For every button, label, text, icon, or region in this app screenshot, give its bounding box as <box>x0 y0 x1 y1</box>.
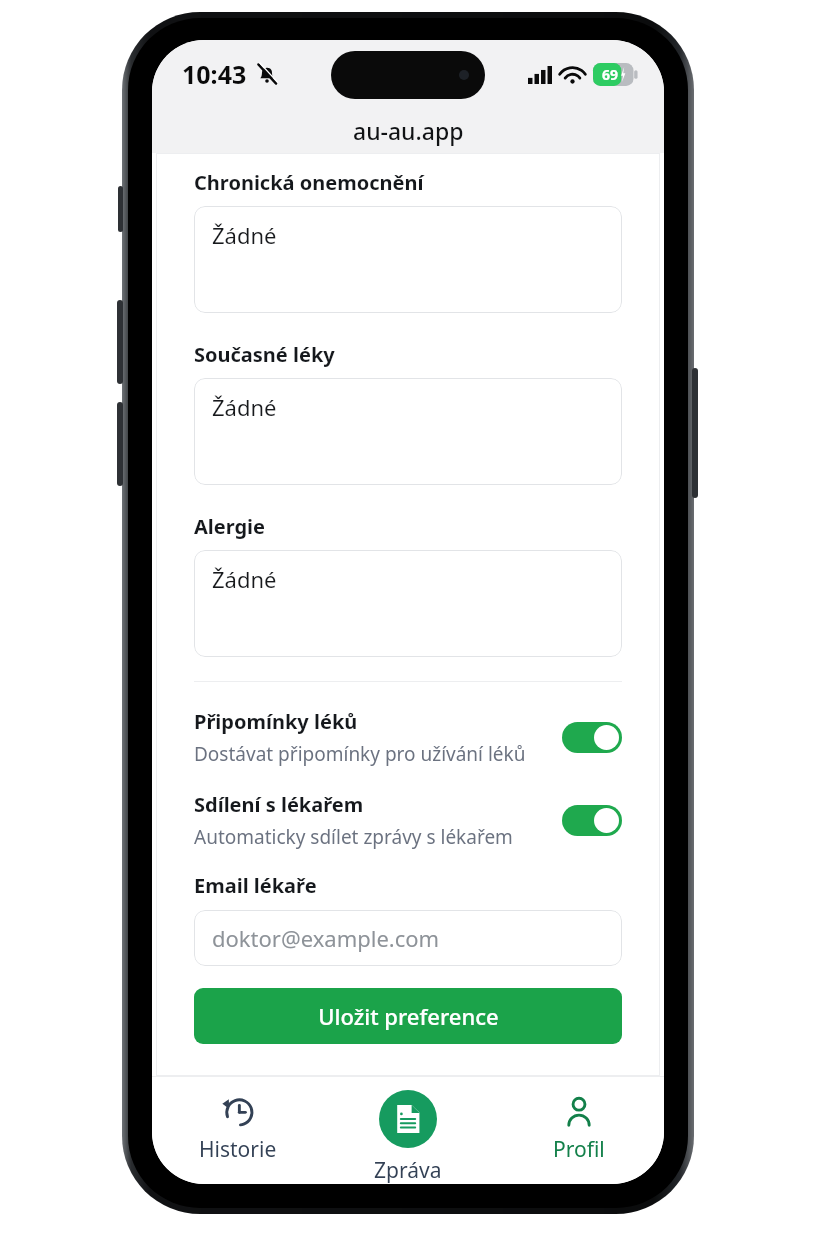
staticText: doktor@example.com <box>212 923 440 953</box>
button[interactable]: Toggle <box>562 805 622 836</box>
staticText: 69 <box>602 65 619 84</box>
button[interactable]: doktor@example.com <box>194 910 622 966</box>
staticText: Dostávat připomínky pro užívání léků <box>194 741 526 767</box>
staticText: Profil <box>553 1135 605 1164</box>
staticText: Sdílení s lékařem <box>194 791 364 818</box>
staticText: Historie <box>199 1135 277 1164</box>
button[interactable]: Připomínky léků <box>194 708 622 767</box>
staticText: Alergie <box>194 513 266 540</box>
staticText: Automaticky sdílet zprávy s lékařem <box>194 824 513 850</box>
button[interactable]: Historie <box>163 1076 313 1164</box>
staticText: Email lékaře <box>194 872 317 899</box>
button[interactable]: Žádné <box>194 550 622 657</box>
staticText: Chronická onemocnění <box>194 169 424 196</box>
staticText: Současné léky <box>194 341 335 368</box>
staticText: Uložit preference <box>318 1001 499 1031</box>
button[interactable]: Žádné <box>194 206 622 313</box>
staticText: Zpráva <box>374 1156 442 1184</box>
staticText: Připomínky léků <box>194 708 358 735</box>
staticText: Žádné <box>212 220 277 250</box>
staticText: 10:43 <box>182 57 247 91</box>
button[interactable]: Zpráva <box>323 1076 493 1184</box>
button[interactable]: Žádné <box>194 378 622 485</box>
staticText: Žádné <box>212 392 277 422</box>
staticText: au-au.app <box>353 115 464 146</box>
button[interactable]: Toggle <box>562 722 622 753</box>
staticText: Žádné <box>212 564 277 594</box>
button[interactable]: Profil <box>504 1076 654 1164</box>
button[interactable]: Uložit preference <box>194 988 622 1044</box>
button[interactable]: Sdílení s lékařem <box>194 791 622 850</box>
